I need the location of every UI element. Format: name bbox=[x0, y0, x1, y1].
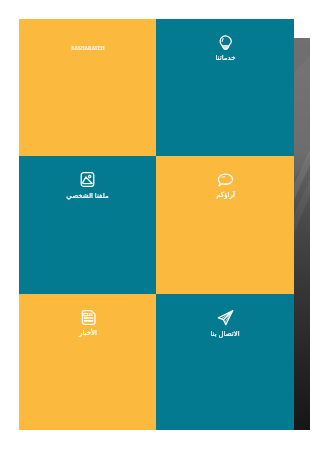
button[interactable]: الاتصال بنا bbox=[156, 294, 294, 430]
button[interactable]: خدماتنا bbox=[156, 19, 294, 156]
staticText: BASHARAYEH bbox=[71, 45, 105, 52]
button[interactable]: آراؤكم bbox=[156, 156, 294, 294]
button[interactable]: الأخبار bbox=[19, 294, 156, 430]
button[interactable]: Open navigation drawer bbox=[294, 38, 310, 430]
staticText: خدماتنا bbox=[215, 54, 236, 62]
button[interactable]: BASHARAYEH bbox=[19, 19, 156, 156]
staticText: الأخبار bbox=[79, 329, 97, 337]
staticText: آراؤكم bbox=[216, 191, 235, 199]
staticText: الاتصال بنا bbox=[210, 329, 240, 339]
staticText: ملفنا الشخصي bbox=[66, 191, 109, 201]
button[interactable]: ملفنا الشخصي bbox=[19, 156, 156, 294]
